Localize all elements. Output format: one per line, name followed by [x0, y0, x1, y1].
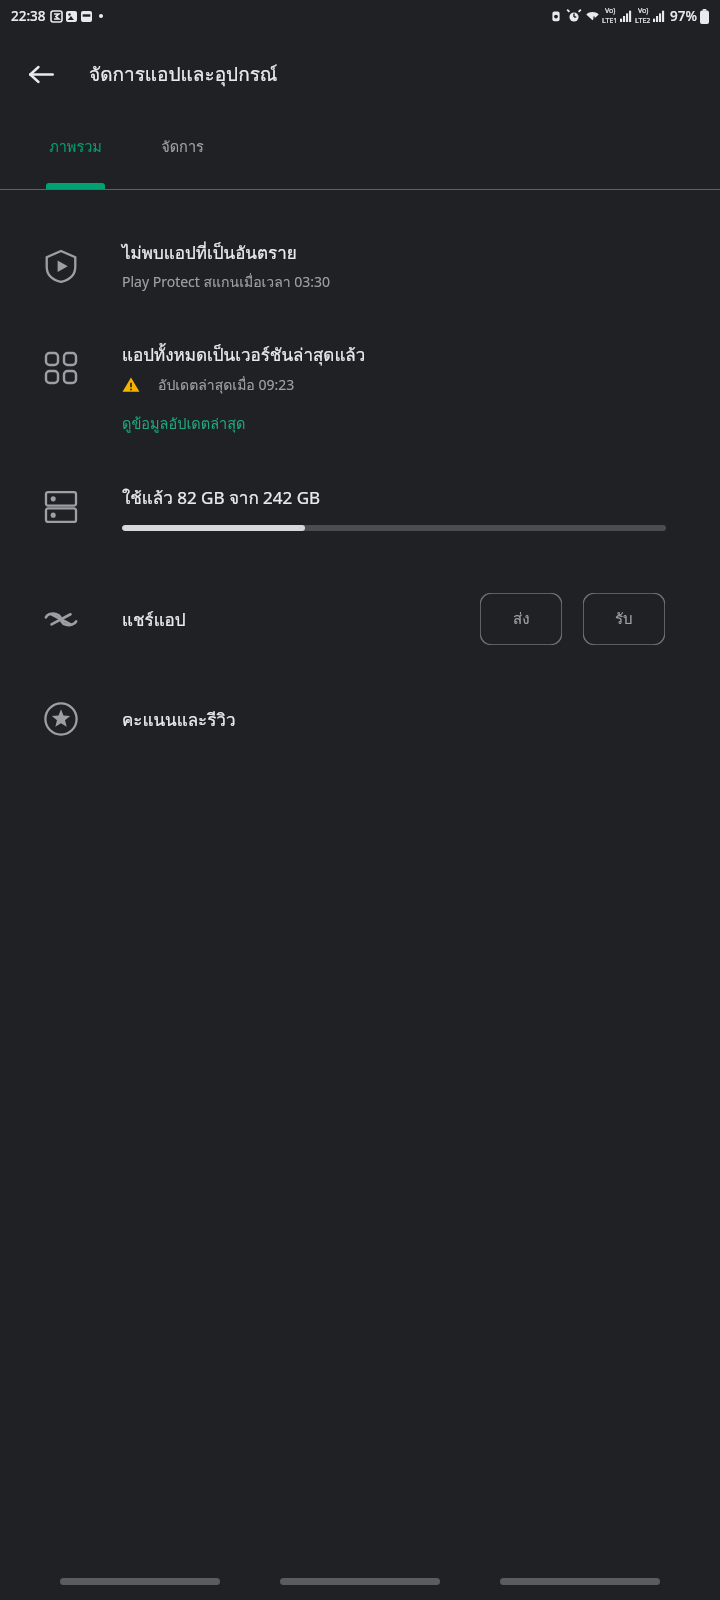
- button[interactable]: ใช้แล้ว 82 GB จาก 242 GB: [0, 465, 720, 549]
- staticText: LTE1: [602, 16, 618, 26]
- button[interactable]: Navigation: [60, 1578, 220, 1585]
- staticText: ดูข้อมูลอัปเดตล่าสุด: [122, 412, 246, 435]
- staticText: Play Protect สแกนเมื่อเวลา 03:30: [122, 271, 331, 293]
- staticText: อัปเดตล่าสุดเมื่อ 09:23: [158, 374, 295, 396]
- button[interactable]: จัดการ: [129, 116, 236, 190]
- staticText: ส่ง: [513, 607, 530, 631]
- staticText: จัดการแอปและอุปกรณ์: [89, 59, 278, 89]
- button[interactable]: ภาพรวม: [22, 116, 129, 190]
- staticText: 22:38: [11, 7, 46, 25]
- staticText: คะแนนและรีวิว: [122, 706, 236, 733]
- button[interactable]: รับ: [583, 593, 665, 645]
- button[interactable]: แอปทั้งหมดเป็นเวอร์ชันล่าสุดแล้ว: [0, 328, 720, 408]
- staticText: ภาพรวม: [49, 135, 102, 158]
- button[interactable]: ดูข้อมูลอัปเดตล่าสุด: [122, 408, 246, 439]
- button[interactable]: Navigation: [280, 1578, 440, 1585]
- staticText: จัดการ: [161, 135, 204, 158]
- button[interactable]: ส่ง: [480, 593, 562, 645]
- staticText: ไม่พบแอปที่เป็นอันตราย: [122, 239, 297, 266]
- staticText: 97%: [670, 7, 697, 25]
- staticText: แชร์แอป: [122, 606, 186, 633]
- staticText: ใช้แล้ว 82 GB จาก 242 GB: [122, 484, 321, 511]
- button[interactable]: Back: [17, 50, 65, 98]
- staticText: Vo): [605, 6, 616, 16]
- staticText: รับ: [615, 607, 633, 631]
- staticText: Vo): [638, 6, 649, 16]
- button[interactable]: Navigation: [500, 1578, 660, 1585]
- staticText: แอปทั้งหมดเป็นเวอร์ชันล่าสุดแล้ว: [122, 341, 366, 368]
- button[interactable]: ไม่พบแอปที่เป็นอันตราย: [0, 226, 720, 306]
- staticText: LTE2: [635, 16, 651, 26]
- button[interactable]: คะแนนและรีวิว: [0, 679, 720, 759]
